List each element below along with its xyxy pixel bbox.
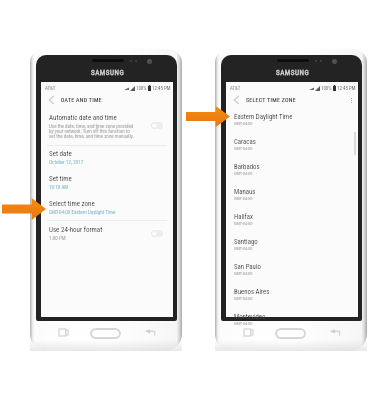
- button[interactable]: Navigate up: [42, 91, 60, 109]
- staticText: GMT-04:00 Eastern Daylight Time: [49, 209, 116, 215]
- button[interactable]: Back: [145, 329, 156, 336]
- staticText: GMT-04:00: [234, 246, 253, 251]
- staticText: DATE AND TIME: [61, 97, 102, 104]
- staticText: Eastern Daylight Time: [234, 113, 293, 121]
- button[interactable]: Select time zone: [41, 196, 173, 222]
- button[interactable]: Set date: [41, 146, 173, 172]
- button[interactable]: Barbados: [226, 162, 358, 186]
- staticText: Use the date, time, and time zone provid…: [49, 123, 134, 139]
- staticText: Montevideo: [234, 313, 266, 321]
- button[interactable]: Montevideo: [226, 312, 358, 336]
- staticText: GMT-04:00: [234, 146, 253, 151]
- button[interactable]: Toggle switch: [151, 230, 163, 237]
- button[interactable]: Home: [275, 328, 306, 339]
- button[interactable]: Home: [90, 328, 121, 339]
- button[interactable]: Back: [330, 329, 341, 336]
- button[interactable]: Caracas: [226, 137, 358, 161]
- button[interactable]: Toggle switch: [151, 122, 163, 129]
- button[interactable]: San Paulo: [226, 262, 358, 286]
- button[interactable]: Santiago: [226, 237, 358, 261]
- staticText: 12:45 PM: [337, 85, 356, 91]
- staticText: Select time zone: [49, 200, 95, 208]
- staticText: Manaus: [234, 188, 256, 196]
- button[interactable]: Recent apps: [244, 329, 253, 336]
- staticText: 100%: [321, 85, 332, 91]
- staticText: Caracas: [234, 138, 256, 146]
- button[interactable]: Halifax: [226, 212, 358, 236]
- button[interactable]: Eastern Daylight Time: [226, 112, 358, 136]
- staticText: 12:45 PM: [152, 85, 171, 91]
- staticText: Santiago: [234, 238, 258, 246]
- staticText: 10:18 AM: [49, 184, 69, 190]
- staticText: October 12, 2017: [49, 159, 84, 165]
- button[interactable]: Manaus: [226, 187, 358, 211]
- staticText: Use 24-hour format: [49, 226, 103, 234]
- button[interactable]: Recent apps: [59, 329, 68, 336]
- staticText: Set time: [49, 175, 72, 183]
- button[interactable]: Buenos Aires: [226, 287, 358, 311]
- staticText: GMT-04:00: [234, 121, 253, 126]
- staticText: Halifax: [234, 213, 253, 221]
- button[interactable]: More options: [344, 93, 358, 107]
- staticText: Automatic date and time: [49, 114, 117, 122]
- staticText: GMT-04:00: [234, 171, 253, 176]
- staticText: Barbados: [234, 163, 260, 171]
- button[interactable]: Set time: [41, 171, 173, 197]
- staticText: 1:00 PM: [49, 235, 66, 241]
- staticText: AT&T: [45, 85, 56, 91]
- staticText: SELECT TIME ZONE: [246, 97, 296, 104]
- staticText: Buenos Aires: [234, 288, 270, 296]
- button[interactable]: Use 24-hour format: [41, 223, 173, 245]
- staticText: SAMSUNG: [91, 68, 125, 76]
- staticText: GMT-04:00: [234, 196, 253, 201]
- staticText: GMT-04:00: [234, 296, 253, 301]
- staticText: Set date: [49, 150, 72, 158]
- button[interactable]: Navigate up: [227, 91, 245, 109]
- staticText: 100%: [136, 85, 147, 91]
- staticText: AT&T: [230, 85, 241, 91]
- staticText: GMT-04:00: [234, 321, 253, 326]
- staticText: GMT-04:00: [234, 221, 253, 226]
- button[interactable]: Automatic date and time: [41, 111, 173, 141]
- staticText: GMT-04:00: [234, 271, 253, 276]
- staticText: San Paulo: [234, 263, 261, 271]
- staticText: SAMSUNG: [276, 68, 310, 76]
